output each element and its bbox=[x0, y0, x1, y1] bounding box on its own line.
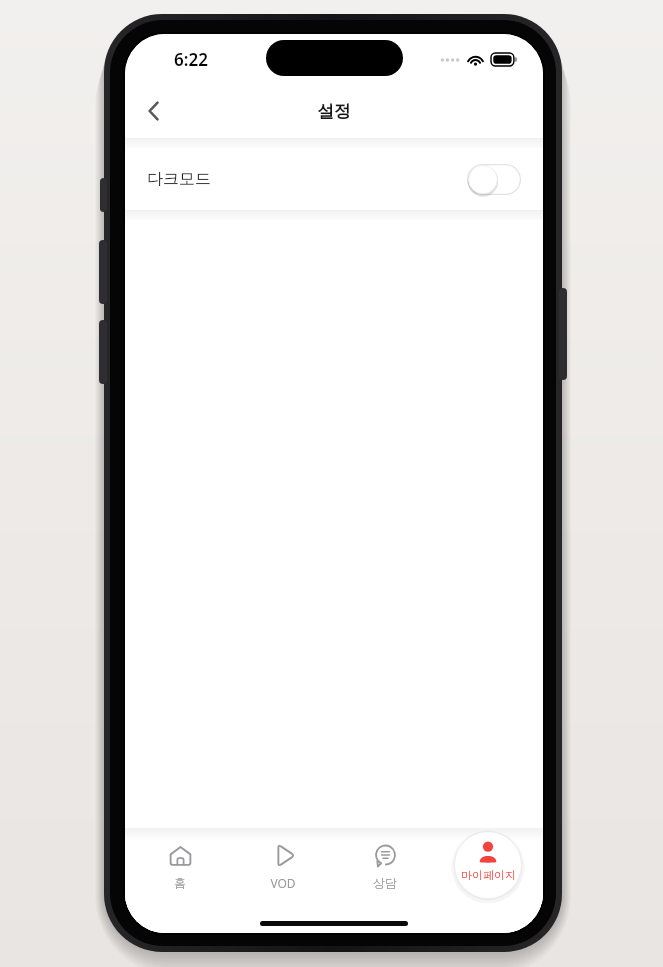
staticText: 설정 bbox=[317, 101, 351, 122]
staticText: 상담 bbox=[373, 875, 397, 890]
staticText: 홈 bbox=[174, 875, 186, 890]
staticText: 다크모드 bbox=[147, 169, 211, 189]
staticText: 마이페이지 bbox=[461, 868, 516, 882]
button[interactable]: 다크모드 bbox=[125, 148, 543, 210]
button[interactable]: 다크모드 켜기 bbox=[467, 164, 521, 195]
staticText: 6:22 bbox=[174, 48, 208, 71]
button[interactable]: 뒤로 가기 bbox=[131, 88, 177, 134]
button[interactable]: 마이페이지 bbox=[440, 834, 536, 896]
button[interactable]: 상담 bbox=[337, 834, 433, 896]
staticText: VOD bbox=[270, 875, 296, 891]
button[interactable]: VOD bbox=[235, 834, 331, 896]
button[interactable]: 홈 bbox=[132, 834, 228, 896]
